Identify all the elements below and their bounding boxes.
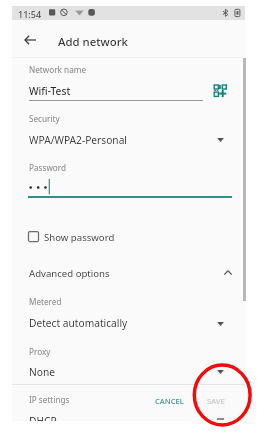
staticText: Wifi-Test xyxy=(29,84,71,98)
staticText: SAVE xyxy=(207,396,225,406)
button[interactable] xyxy=(17,262,235,284)
staticText: Security xyxy=(29,113,60,124)
staticText: CANCEL xyxy=(155,396,184,406)
staticText: WPA/WPA2-Personal xyxy=(29,133,127,147)
staticText: Proxy xyxy=(29,346,51,357)
button[interactable] xyxy=(200,390,236,410)
button[interactable] xyxy=(17,310,235,334)
button[interactable] xyxy=(17,360,235,382)
button[interactable]: Scan QR code to add network xyxy=(207,78,232,103)
button[interactable] xyxy=(22,227,127,246)
staticText: None xyxy=(29,365,55,379)
button[interactable]: Back xyxy=(17,27,42,52)
staticText: Network name xyxy=(29,64,86,75)
staticText: Show password xyxy=(44,231,115,244)
staticText: DHCP xyxy=(29,414,57,421)
staticText: Password xyxy=(29,162,67,173)
button[interactable] xyxy=(148,390,194,410)
staticText: Advanced options xyxy=(29,267,110,280)
button[interactable] xyxy=(17,126,235,150)
staticText: Add network xyxy=(58,34,128,50)
staticText: Metered xyxy=(29,296,62,307)
staticText: 11:54 xyxy=(18,8,42,20)
staticText: Detect automatically xyxy=(29,316,128,330)
staticText: IP settings xyxy=(29,394,70,405)
